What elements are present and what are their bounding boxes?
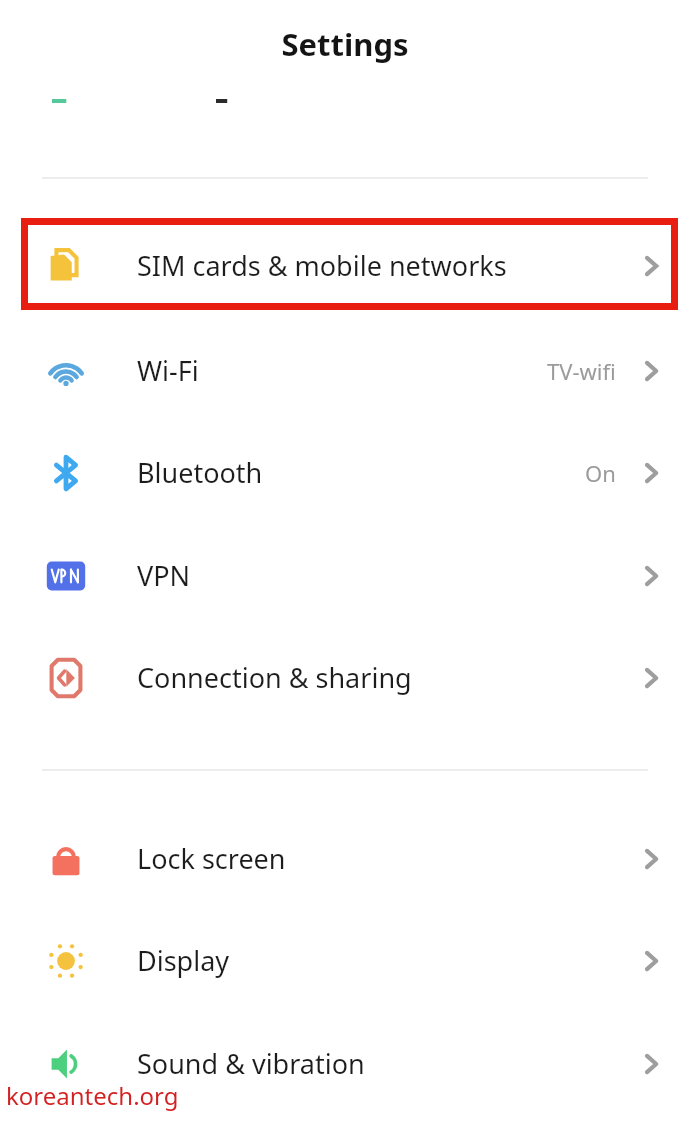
button[interactable]: Display xyxy=(0,916,690,1005)
staticText: On xyxy=(585,458,616,488)
staticText: Lock screen xyxy=(137,840,286,877)
staticText: SIM cards & mobile networks xyxy=(137,247,507,284)
staticText: koreantech.org xyxy=(6,1079,179,1112)
button[interactable]: Sound & vibration xyxy=(0,1019,690,1108)
button[interactable]: Bluetooth xyxy=(0,428,690,517)
button[interactable]: Lock screen xyxy=(0,814,690,903)
staticText: Display xyxy=(137,942,230,979)
button[interactable]: Connection & sharing xyxy=(0,633,690,722)
staticText: Connection & sharing xyxy=(137,659,412,696)
button[interactable]: SIM cards & mobile networks xyxy=(0,221,690,310)
button[interactable] xyxy=(0,88,690,178)
staticText: Bluetooth xyxy=(137,454,263,491)
staticText: VPN xyxy=(137,557,191,594)
button[interactable]: Wi-Fi xyxy=(0,326,690,415)
staticText: Wi-Fi xyxy=(137,352,199,389)
staticText: TV-wifi xyxy=(547,356,616,386)
staticText: Settings xyxy=(281,23,409,65)
staticText: Sound & vibration xyxy=(137,1045,365,1082)
button[interactable]: VPN xyxy=(0,531,690,620)
